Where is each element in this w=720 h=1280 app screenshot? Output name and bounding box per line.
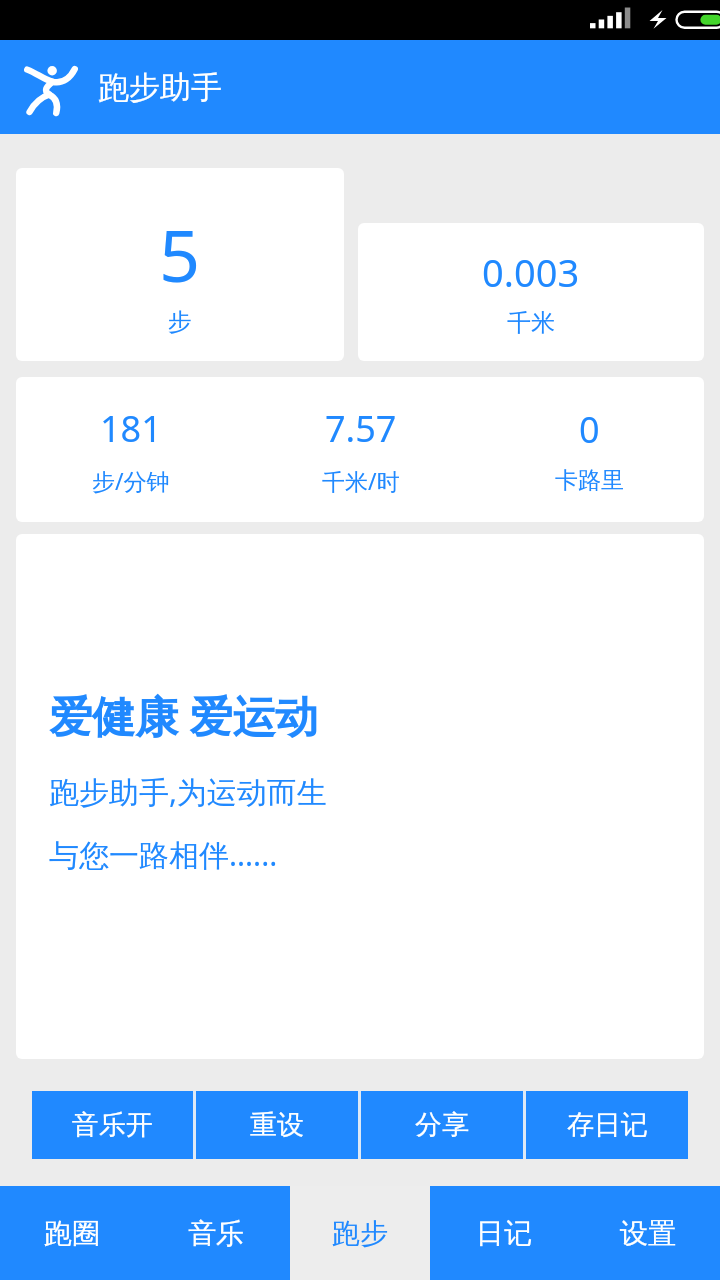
button[interactable]: 0.003 (358, 223, 704, 361)
staticText: 爱健康 爱运动 (49, 686, 319, 745)
staticText: 步 (168, 307, 192, 337)
button[interactable]: 设置 (576, 1186, 720, 1280)
button[interactable]: 分享 (361, 1091, 523, 1159)
staticText: 千米/时 (322, 465, 400, 496)
button[interactable]: Running assistant (22, 58, 80, 116)
staticText: 设置 (620, 1216, 676, 1251)
staticText: 音乐 (188, 1216, 244, 1251)
staticText: 跑步 (332, 1216, 388, 1251)
staticText: 日记 (476, 1216, 532, 1251)
staticText: 存日记 (567, 1108, 648, 1142)
staticText: 0.003 (482, 246, 580, 298)
button[interactable]: 日记 (432, 1186, 576, 1280)
button[interactable]: 音乐开 (32, 1091, 193, 1159)
staticText: 与您一路相伴...... (49, 834, 278, 875)
button[interactable]: 0 (475, 377, 704, 522)
staticText: 181 (100, 404, 162, 453)
button[interactable]: 重设 (196, 1091, 358, 1159)
staticText: 7.57 (325, 404, 397, 453)
staticText: 跑圈 (44, 1216, 100, 1251)
staticText: 卡路里 (555, 466, 624, 495)
staticText: 步/分钟 (92, 465, 170, 496)
button[interactable]: 5 (16, 168, 344, 361)
button[interactable]: 跑步 (290, 1186, 430, 1280)
button[interactable]: 7.57 (246, 377, 475, 522)
button[interactable]: 存日记 (526, 1091, 688, 1159)
button[interactable]: 跑圈 (0, 1186, 144, 1280)
staticText: 音乐开 (72, 1108, 153, 1142)
button[interactable]: 181 (16, 377, 246, 522)
staticText: 重设 (250, 1108, 304, 1142)
staticText: 5 (159, 205, 201, 303)
staticText: 跑步助手 (98, 68, 222, 107)
staticText: 千米 (507, 308, 555, 338)
staticText: 0 (579, 405, 600, 454)
button[interactable]: 音乐 (144, 1186, 288, 1280)
staticText: 分享 (415, 1108, 469, 1142)
staticText: 跑步助手,为运动而生 (49, 771, 328, 812)
